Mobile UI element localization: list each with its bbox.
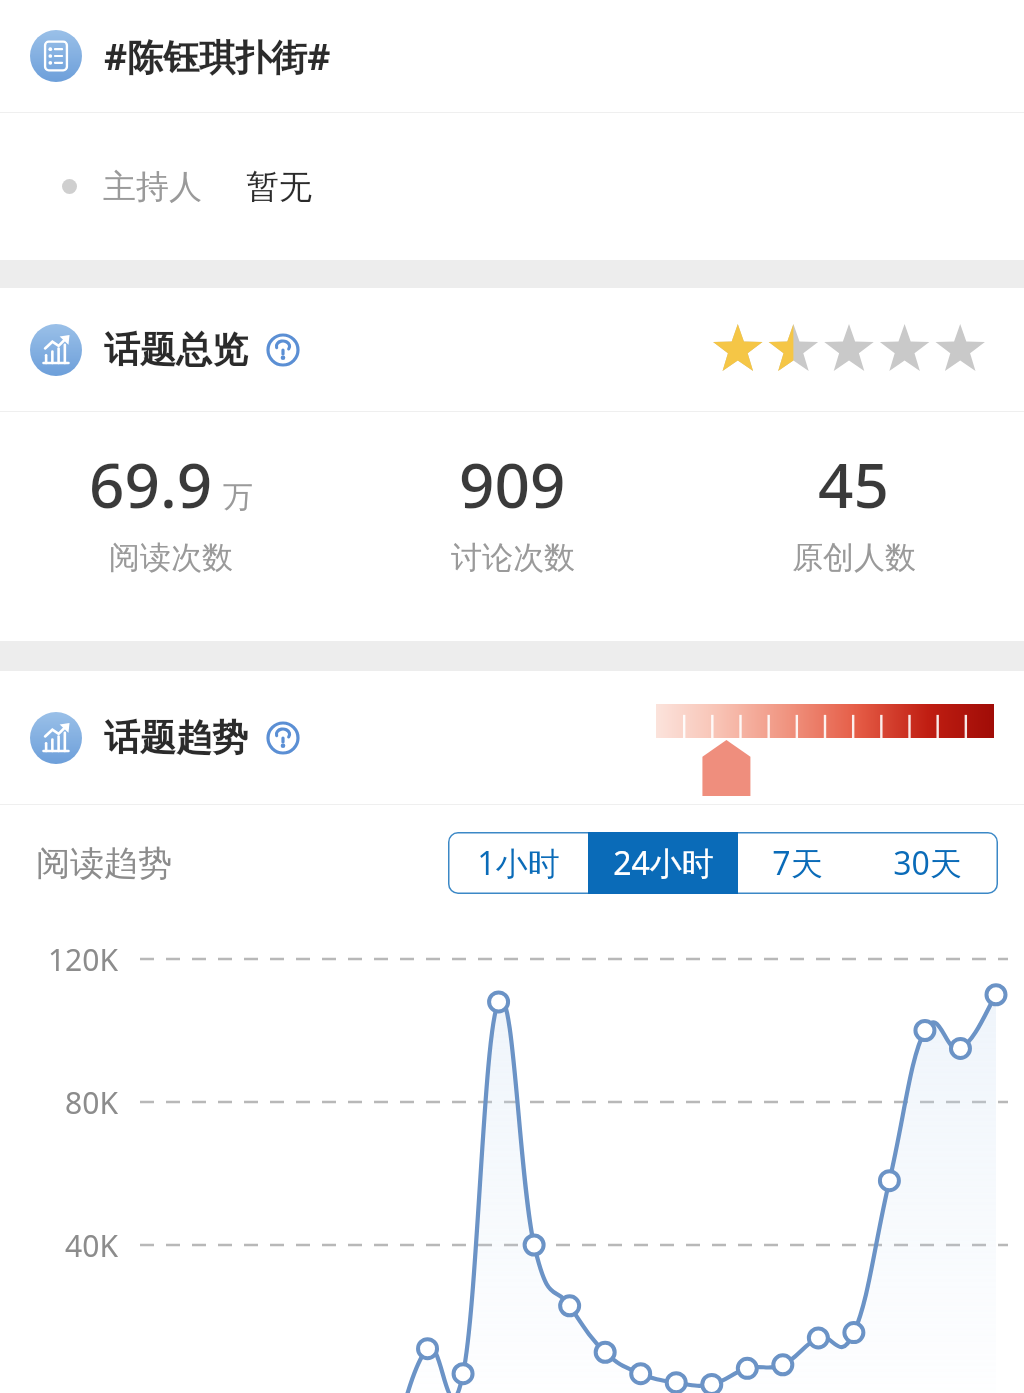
- button[interactable]: Help about topic trend: [266, 721, 300, 755]
- button[interactable]: #陈钰琪扑街#: [0, 0, 1024, 112]
- staticText: 45: [818, 442, 889, 526]
- staticText: 909: [459, 442, 566, 526]
- staticText: 万: [223, 478, 253, 516]
- staticText: 阅读趋势: [36, 842, 172, 885]
- staticText: #陈钰琪扑街#: [104, 32, 331, 81]
- button[interactable]: 24小时: [588, 832, 738, 894]
- button[interactable]: 69.9: [0, 442, 342, 577]
- staticText: 1小时: [477, 841, 560, 885]
- staticText: 80K: [0, 1082, 118, 1123]
- staticText: 暂无: [246, 166, 312, 208]
- staticText: 69.9: [89, 442, 213, 526]
- staticText: 40K: [0, 1225, 118, 1266]
- button[interactable]: 主持人: [0, 113, 1024, 260]
- staticText: 30天: [893, 841, 962, 885]
- button[interactable]: 7天: [738, 832, 856, 894]
- staticText: 120K: [0, 939, 118, 980]
- button[interactable]: 30天: [856, 832, 998, 894]
- staticText: 主持人: [103, 166, 202, 208]
- staticText: 24小时: [613, 841, 714, 885]
- staticText: 话题趋势: [104, 715, 248, 760]
- button[interactable]: 1小时: [448, 832, 588, 894]
- staticText: 话题总览: [104, 327, 248, 372]
- staticText: 阅读次数: [109, 538, 233, 577]
- staticText: 讨论次数: [451, 538, 575, 577]
- button[interactable]: 45: [683, 442, 1024, 577]
- button[interactable]: Help about topic overview: [266, 333, 300, 367]
- button[interactable]: 909: [342, 442, 683, 577]
- staticText: 原创人数: [792, 538, 916, 577]
- staticText: 7天: [772, 841, 823, 885]
